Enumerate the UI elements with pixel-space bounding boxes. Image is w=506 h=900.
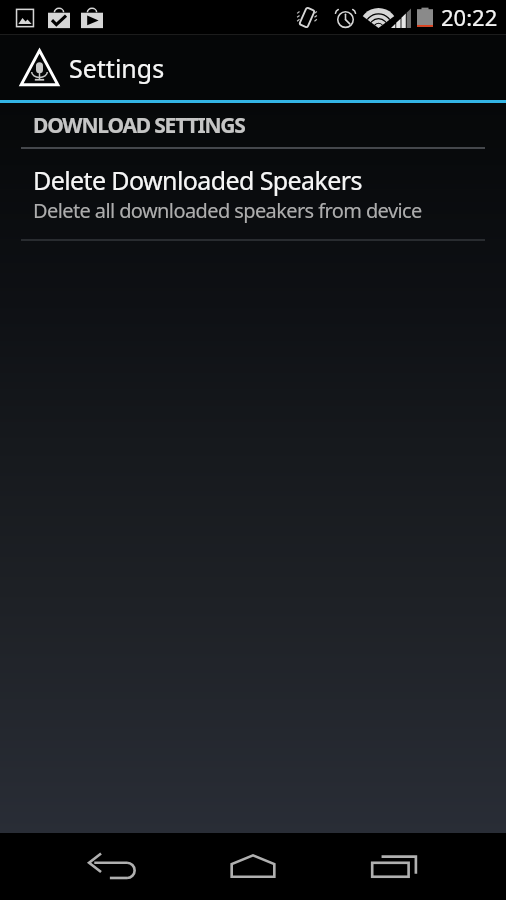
staticText: DOWNLOAD SETTINGS xyxy=(33,111,245,140)
button[interactable]: Recent apps xyxy=(323,833,463,900)
staticText: 20:22 xyxy=(441,2,498,32)
staticText: Delete Downloaded Speakers xyxy=(33,163,362,197)
staticText: Settings xyxy=(69,51,165,85)
staticText: Delete all downloaded speakers from devi… xyxy=(33,197,422,224)
other: App icon xyxy=(20,49,59,87)
button[interactable]: Home xyxy=(183,833,323,900)
button[interactable]: Back xyxy=(43,833,183,900)
button[interactable]: Delete Downloaded Speakers xyxy=(0,149,506,239)
button[interactable]: App icon xyxy=(0,35,506,100)
